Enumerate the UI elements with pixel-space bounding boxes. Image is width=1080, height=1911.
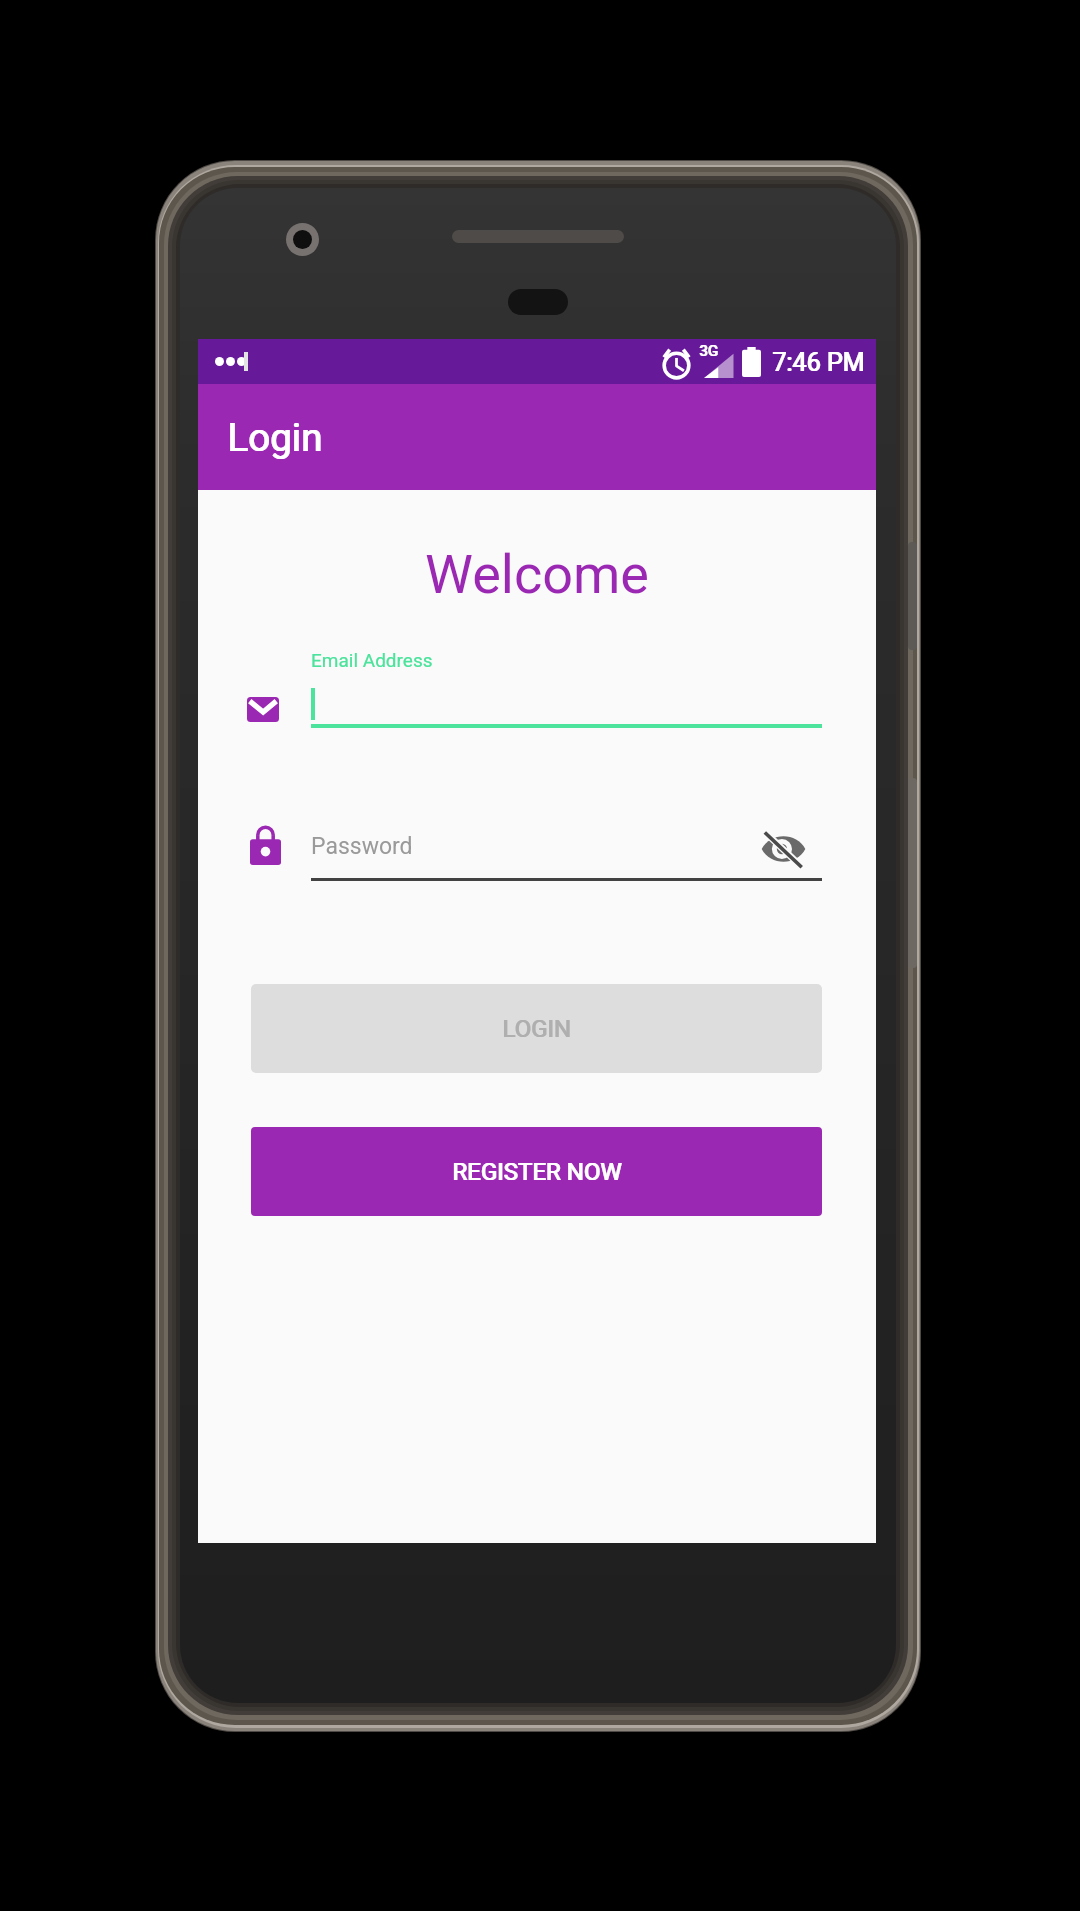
- staticText: 7:46 PM: [773, 348, 866, 377]
- staticText: Password: [311, 833, 413, 860]
- staticText: Welcome: [198, 543, 876, 606]
- staticText: 3G: [700, 342, 719, 360]
- staticText: LOGIN: [502, 1015, 571, 1043]
- staticText: Email Address: [311, 649, 433, 671]
- button[interactable]: LOGIN: [251, 984, 822, 1073]
- button[interactable]: Show password: [757, 823, 809, 875]
- staticText: Login: [228, 415, 323, 460]
- staticText: LOGIN: [503, 1015, 572, 1043]
- staticText: 3G: [699, 342, 718, 360]
- staticText: REGISTER NOW: [452, 1158, 622, 1186]
- staticText: REGISTER NOW: [453, 1158, 623, 1186]
- button[interactable]: REGISTER NOW: [251, 1127, 822, 1216]
- staticText: Login: [227, 415, 322, 460]
- staticText: 7:46 PM: [772, 348, 865, 377]
